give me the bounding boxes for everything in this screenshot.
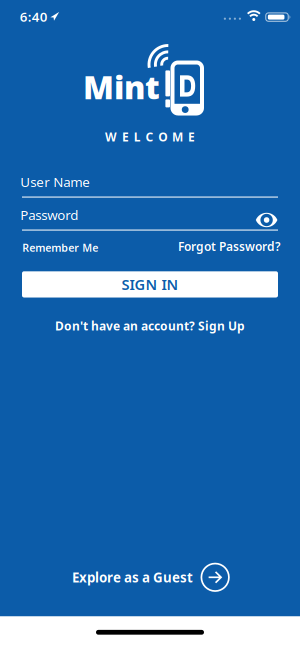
staticText: Forgot Password?: [178, 238, 281, 254]
staticText: C: [145, 129, 153, 145]
button[interactable]: Show password: [256, 213, 277, 227]
button[interactable]: Password: [22, 206, 278, 232]
button[interactable]: User Name: [22, 173, 278, 198]
button[interactable]: Explore as a Guest: [72, 563, 229, 591]
staticText: User Name: [20, 173, 90, 191]
staticText: Don't have an account? Sign Up: [55, 318, 245, 334]
staticText: Remember Me: [22, 240, 98, 255]
staticText: Password: [20, 206, 78, 224]
staticText: W: [105, 129, 117, 145]
button[interactable]: Don't have an account? Sign Up: [55, 318, 245, 334]
staticText: Mint: [83, 66, 160, 108]
staticText: Explore as a Guest: [72, 568, 193, 586]
button[interactable]: SIGN IN: [22, 271, 278, 297]
staticText: E: [122, 129, 129, 145]
staticText: E: [188, 129, 195, 145]
staticText: SIGN IN: [121, 275, 178, 294]
staticText: 6:40: [20, 8, 48, 25]
staticText: M: [172, 129, 183, 145]
staticText: O: [158, 129, 167, 145]
staticText: L: [134, 129, 141, 145]
button[interactable]: Remember Me: [22, 240, 98, 255]
button[interactable]: Forgot Password?: [178, 238, 281, 254]
